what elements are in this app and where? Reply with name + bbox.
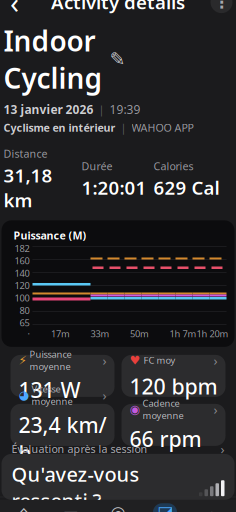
staticText: ›	[102, 386, 106, 404]
button[interactable]: ◎	[94, 503, 141, 512]
staticText: ◎	[110, 502, 125, 512]
staticText: Qu'avez-vous ressenti ?	[11, 461, 139, 512]
staticText: Vitesse moyenne	[31, 383, 72, 407]
staticText: 33m	[90, 327, 109, 340]
staticText: Activity details	[51, 0, 185, 14]
staticText: 1:20:01	[81, 175, 146, 200]
staticText: 80	[19, 304, 29, 316]
staticText: 19:39	[109, 101, 140, 117]
staticText: 1h 7m	[169, 327, 196, 340]
button[interactable]: ◉	[121, 404, 225, 446]
button[interactable]: ⌂	[0, 503, 47, 512]
button[interactable]: More options	[210, 0, 236, 13]
staticText: Indoor Cycling	[3, 22, 102, 96]
staticText: Calories	[153, 159, 193, 173]
staticText: 120 bpm	[129, 372, 217, 400]
staticText: Puissance moyenne	[29, 348, 71, 373]
staticText: ◕	[18, 388, 28, 402]
staticText: 629 Cal	[153, 175, 219, 200]
staticText: 140	[14, 267, 29, 279]
staticText: 65	[19, 316, 29, 329]
staticText: |	[98, 102, 104, 117]
staticText: 100	[14, 292, 29, 304]
staticText: ◉	[129, 402, 139, 416]
button[interactable]: Évaluation après la session	[1, 454, 234, 500]
button[interactable]: ☰	[47, 509, 94, 512]
staticText: ♥	[129, 353, 140, 367]
button[interactable]: ♥	[121, 355, 225, 397]
staticText: FC moy	[143, 354, 175, 366]
staticText: 50m	[130, 327, 149, 340]
staticText: ◪	[157, 502, 173, 512]
staticText: ·	[27, 327, 30, 340]
staticText: Cyclisme en intérieur	[3, 120, 115, 135]
staticText: Évaluation après la session	[11, 442, 147, 456]
staticText: ›	[220, 440, 224, 458]
staticText: |	[120, 120, 126, 135]
staticText: ⌂	[18, 502, 29, 512]
staticText: WAHOO APP	[131, 120, 193, 135]
staticText: ⚡︎	[18, 353, 26, 367]
button[interactable]: ◕	[10, 404, 114, 446]
staticText: Durée	[81, 159, 112, 173]
staticText: ✎	[109, 49, 125, 70]
staticText: 1h 20m	[196, 327, 228, 340]
staticText: ›	[213, 400, 217, 418]
staticText: ‹	[10, 0, 19, 22]
staticText: ›	[102, 351, 106, 369]
staticText: 160	[14, 254, 29, 267]
staticText: 131 W	[18, 376, 80, 404]
staticText: Cadence moyenne	[142, 397, 183, 422]
staticText: Puissance (M)	[13, 228, 86, 242]
button[interactable]: ◪	[141, 503, 188, 512]
staticText: ☰	[63, 509, 79, 512]
staticText: ›	[213, 351, 217, 369]
staticText: 13 janvier 2026	[3, 101, 93, 117]
button[interactable]: ⚡︎	[10, 355, 114, 397]
button[interactable]: Back	[0, 0, 31, 19]
staticText: 23,4 km/h	[18, 410, 106, 467]
staticText: 17m	[51, 327, 70, 340]
staticText: ⋮	[213, 0, 229, 11]
staticText: Distance	[3, 147, 47, 161]
button[interactable]: Rename activity	[108, 50, 126, 68]
staticText: 66 rpm	[129, 425, 201, 453]
staticText: 182	[14, 242, 29, 254]
staticText: 120	[14, 279, 29, 292]
staticText: 31,18 km	[3, 163, 52, 212]
